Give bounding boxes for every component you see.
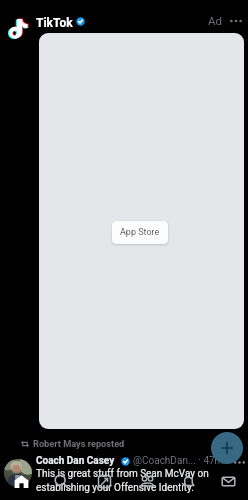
button[interactable]: App Store [39,33,244,429]
staticText: This is great stuff from Sean McVay on e… [36,468,216,494]
staticText: Coach Dan Casey [36,455,115,467]
button[interactable]: Home [11,471,32,492]
button[interactable]: App Store [112,221,168,244]
button[interactable]: Profile photo [4,459,32,487]
button[interactable]: More [233,456,245,468]
button[interactable]: More options [226,11,246,31]
button[interactable]: Notifications [178,471,199,492]
button[interactable]: Compose post [211,432,243,464]
staticText: App Store [120,227,160,238]
staticText: Ad [208,14,222,27]
button[interactable]: Communities [137,471,158,492]
staticText: Robert Mays reposted [33,438,125,449]
staticText: @CoachDan... · 47m [133,455,224,467]
button[interactable]: Search [51,471,72,492]
staticText: TikTok [36,16,73,30]
button[interactable]: Grok [94,471,115,492]
button[interactable]: Messages [218,471,239,492]
